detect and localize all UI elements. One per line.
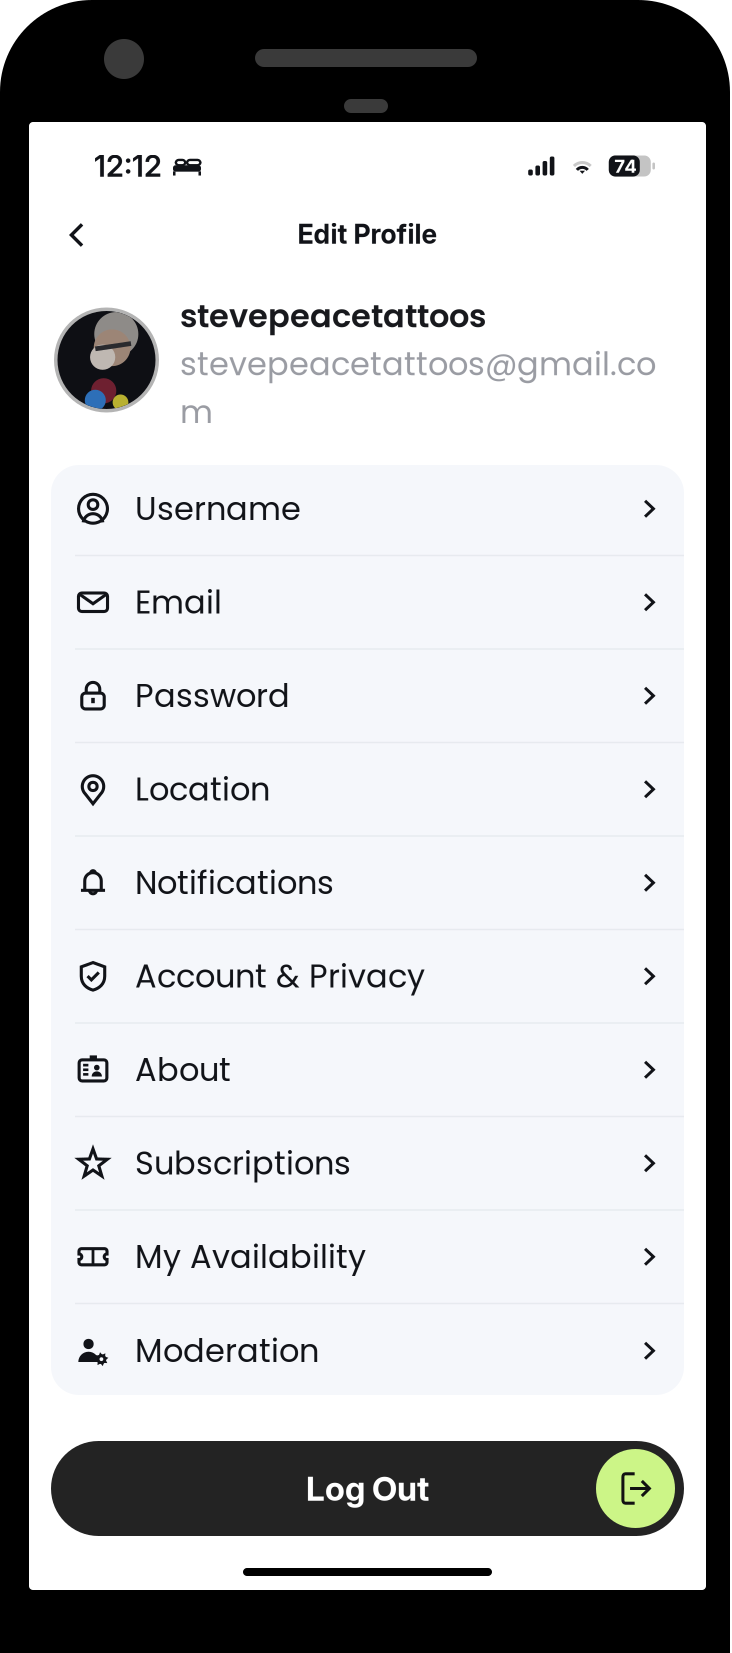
button[interactable]: Account & Privacy <box>51 930 684 1024</box>
button[interactable]: My Availability <box>51 1211 684 1304</box>
button[interactable]: Email <box>51 556 684 650</box>
staticText: My Availability <box>135 1234 366 1279</box>
button[interactable]: About <box>51 1024 684 1117</box>
staticText: Subscriptions <box>135 1141 351 1186</box>
staticText: Username <box>135 486 301 531</box>
staticText: stevepeacetattoos <box>180 294 486 338</box>
button[interactable]: Notifications <box>51 837 684 930</box>
button[interactable]: Moderation <box>51 1304 684 1397</box>
staticText: m <box>180 390 213 434</box>
button[interactable]: Username <box>51 463 684 556</box>
button[interactable]: Password <box>51 650 684 743</box>
staticText: Location <box>135 767 270 812</box>
button[interactable]: Subscriptions <box>51 1117 684 1211</box>
staticText: About <box>135 1047 231 1092</box>
staticText: Password <box>135 673 290 718</box>
staticText: Email <box>135 580 222 625</box>
button[interactable]: Location <box>51 743 684 837</box>
staticText: 74 <box>614 155 637 177</box>
button[interactable]: Log Out <box>51 1441 684 1536</box>
staticText: Account & Privacy <box>135 954 425 999</box>
staticText: Log Out <box>306 1468 429 1509</box>
staticText: Edit Profile <box>297 218 437 250</box>
staticText: Notifications <box>135 860 334 905</box>
staticText: Moderation <box>135 1328 319 1373</box>
button[interactable]: Back <box>49 207 105 263</box>
staticText: 12:12 <box>94 148 162 184</box>
staticText: stevepeacetattoos@gmail.co <box>180 342 656 386</box>
